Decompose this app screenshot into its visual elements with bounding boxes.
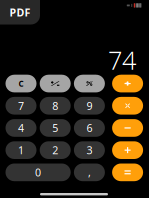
staticText: 0 xyxy=(35,165,41,179)
button[interactable]: 2 xyxy=(40,141,71,159)
button[interactable]: 5 xyxy=(40,119,71,137)
staticText: C xyxy=(18,78,23,89)
button[interactable]: Percent xyxy=(74,75,105,92)
staticText: 7 xyxy=(18,99,24,113)
button[interactable]: 4 xyxy=(5,119,36,137)
button[interactable]: C xyxy=(5,75,36,92)
button[interactable]: Equals xyxy=(112,163,143,181)
staticText: 9 xyxy=(86,99,92,113)
button[interactable]: 0 xyxy=(5,163,71,181)
button[interactable]: 7 xyxy=(5,97,36,115)
staticText: 5 xyxy=(52,121,58,135)
button[interactable]: Divide xyxy=(112,75,143,92)
staticText: 8 xyxy=(52,99,58,113)
button[interactable]: 3 xyxy=(74,141,105,159)
staticText: 1 xyxy=(18,143,24,157)
button[interactable]: 9 xyxy=(74,97,105,115)
staticText: 74 xyxy=(108,43,136,77)
button[interactable]: Plus minus xyxy=(40,75,71,92)
button[interactable]: Subtract xyxy=(112,119,143,137)
staticText: 4 xyxy=(18,121,24,135)
staticText: 3 xyxy=(86,143,92,157)
button[interactable]: Multiply xyxy=(112,97,143,115)
button[interactable]: 6 xyxy=(74,119,105,137)
button[interactable]: 1 xyxy=(5,141,36,159)
staticText: PDF xyxy=(9,5,30,19)
staticText: 6 xyxy=(86,121,92,135)
button[interactable]: , xyxy=(74,163,105,181)
button[interactable]: 8 xyxy=(40,97,71,115)
button[interactable]: Add xyxy=(112,141,143,159)
staticText: , xyxy=(88,165,91,179)
staticText: 2 xyxy=(52,143,58,157)
